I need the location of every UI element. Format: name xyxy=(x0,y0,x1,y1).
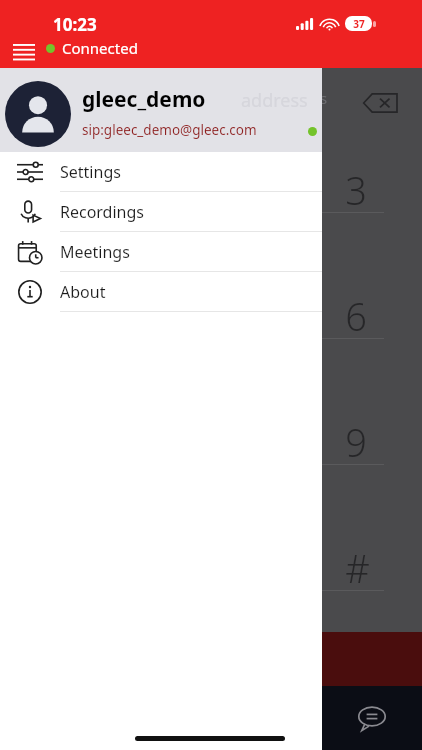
staticText: gleec_demo xyxy=(82,85,206,114)
staticText: 3 xyxy=(345,164,367,216)
button[interactable]: Recordings xyxy=(0,192,322,232)
button[interactable]: address xyxy=(0,68,322,152)
staticText: Connected xyxy=(62,38,138,58)
staticText: Settings xyxy=(60,161,121,183)
button[interactable]: About xyxy=(0,272,322,312)
button[interactable]: Backspace xyxy=(360,83,400,123)
button[interactable]: Open navigation menu xyxy=(6,34,42,70)
button[interactable]: Backspace xyxy=(322,68,422,750)
staticText: s xyxy=(320,88,328,108)
button[interactable]: 6 xyxy=(322,281,422,407)
staticText: 9 xyxy=(345,416,367,468)
staticText: Meetings xyxy=(60,241,130,263)
staticText: About xyxy=(60,281,106,303)
button[interactable]: Connected xyxy=(46,38,138,58)
staticText: # xyxy=(345,542,370,594)
staticText: sip:gleec_demo@gleec.com xyxy=(82,121,257,139)
staticText: Recordings xyxy=(60,201,144,223)
staticText: 10:23 xyxy=(53,13,97,36)
button[interactable]: Call xyxy=(322,632,422,700)
button[interactable]: 9 xyxy=(322,407,422,533)
staticText: address xyxy=(241,88,308,113)
button[interactable]: # xyxy=(322,533,422,659)
button[interactable]: Messages xyxy=(322,686,422,750)
button[interactable]: 3 xyxy=(322,155,422,281)
staticText: 37 xyxy=(353,17,365,31)
staticText: 6 xyxy=(345,290,367,342)
button[interactable]: Meetings xyxy=(0,232,322,272)
button[interactable]: Settings xyxy=(0,152,322,192)
